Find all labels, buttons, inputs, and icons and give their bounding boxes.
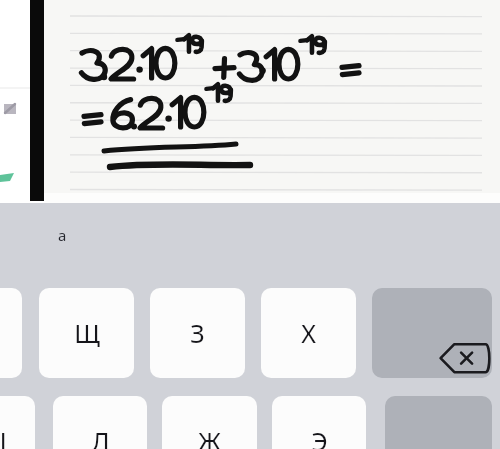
button[interactable]: Ж: [162, 396, 257, 449]
button[interactable]: Backspace: [372, 288, 492, 378]
staticText: Ж: [198, 424, 221, 449]
button[interactable]: Щ: [39, 288, 134, 378]
button[interactable]: а: [58, 218, 100, 252]
button[interactable]: З: [150, 288, 245, 378]
staticText: З: [190, 316, 205, 350]
staticText: Х: [301, 316, 316, 350]
staticText: Э: [311, 424, 328, 449]
button[interactable]: Д: [53, 396, 147, 449]
button[interactable]: Ы: [0, 396, 35, 449]
button[interactable]: Ф: [0, 288, 22, 378]
button[interactable]: Э: [272, 396, 366, 449]
staticText: Ы: [0, 424, 7, 449]
staticText: Щ: [74, 316, 100, 350]
staticText: Д: [91, 424, 110, 449]
staticText: а: [58, 225, 67, 245]
button[interactable]: Х: [261, 288, 356, 378]
